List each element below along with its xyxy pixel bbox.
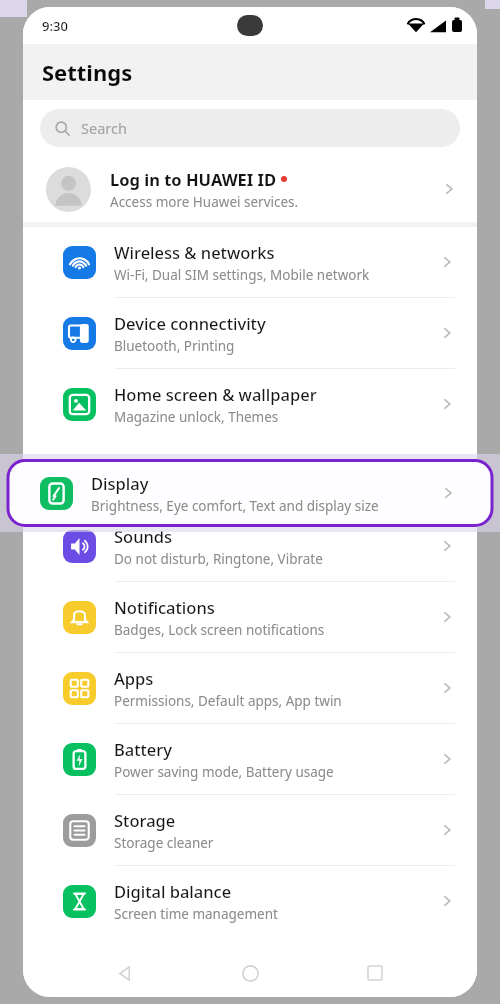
staticText: Wi-Fi, Dual SIM settings, Mobile network [114, 266, 370, 284]
staticText: Battery [114, 738, 173, 760]
staticText: Magazine unlock, Themes [114, 408, 279, 426]
button[interactable]: Log in to HUAWEI ID [23, 156, 477, 222]
button[interactable]: Wireless & networks [23, 227, 477, 297]
button[interactable]: Home [227, 950, 273, 996]
button[interactable]: Display [8, 459, 492, 527]
button[interactable]: Recent apps [352, 950, 398, 996]
button[interactable]: Search [40, 109, 460, 147]
staticText: Do not disturb, Ringtone, Vibrate [114, 550, 323, 568]
button[interactable]: Apps [23, 653, 477, 723]
button[interactable]: Device connectivity [23, 298, 477, 368]
staticText: Brightness, Eye comfort, Text and displa… [91, 497, 379, 515]
staticText: Storage cleaner [114, 834, 214, 852]
staticText: Home screen & wallpaper [114, 383, 317, 405]
staticText: Sounds [114, 525, 173, 547]
button[interactable]: Display [23, 440, 477, 510]
staticText: Log in to HUAWEI ID [110, 168, 277, 190]
staticText: Apps [114, 667, 154, 689]
staticText: Device connectivity [114, 312, 266, 334]
staticText: 9:30 [42, 17, 68, 35]
staticText: Settings [42, 57, 133, 87]
button[interactable]: Sounds [23, 511, 477, 581]
button[interactable]: Digital balance [23, 866, 477, 936]
staticText: Access more Huawei services. [110, 193, 299, 211]
staticText: Screen time management [114, 905, 278, 923]
staticText: Storage [114, 809, 176, 831]
staticText: Display [114, 454, 172, 476]
staticText: Brightness, Eye comfort, Text and displa… [114, 479, 402, 497]
staticText: Permissions, Default apps, App twin [114, 692, 342, 710]
button[interactable]: Battery [23, 724, 477, 794]
staticText: Wireless & networks [114, 241, 275, 263]
staticText: Digital balance [114, 880, 232, 902]
button[interactable]: Home screen & wallpaper [23, 369, 477, 439]
button[interactable]: Notifications [23, 582, 477, 652]
button[interactable]: Back [102, 950, 148, 996]
button[interactable]: Storage [23, 795, 477, 865]
staticText: Display [91, 472, 149, 494]
staticText: Power saving mode, Battery usage [114, 763, 334, 781]
staticText: Bluetooth, Printing [114, 337, 235, 355]
staticText: Search [81, 118, 127, 138]
staticText: Badges, Lock screen notifications [114, 621, 325, 639]
staticText: Notifications [114, 596, 215, 618]
